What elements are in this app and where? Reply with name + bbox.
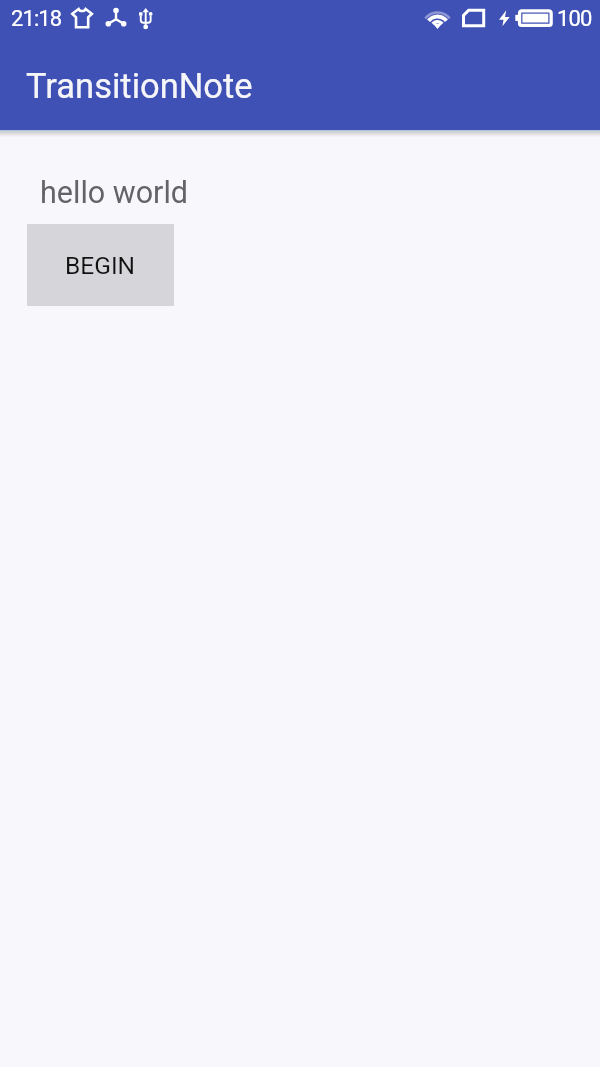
staticText: TransitionNote (26, 66, 253, 106)
button[interactable]: BEGIN (27, 224, 174, 306)
staticText: 21:18 (11, 6, 62, 32)
staticText: BEGIN (65, 251, 136, 280)
staticText: 100 (557, 6, 592, 32)
staticText: hello world (40, 175, 189, 211)
other: Status icons (0, 0, 600, 36)
